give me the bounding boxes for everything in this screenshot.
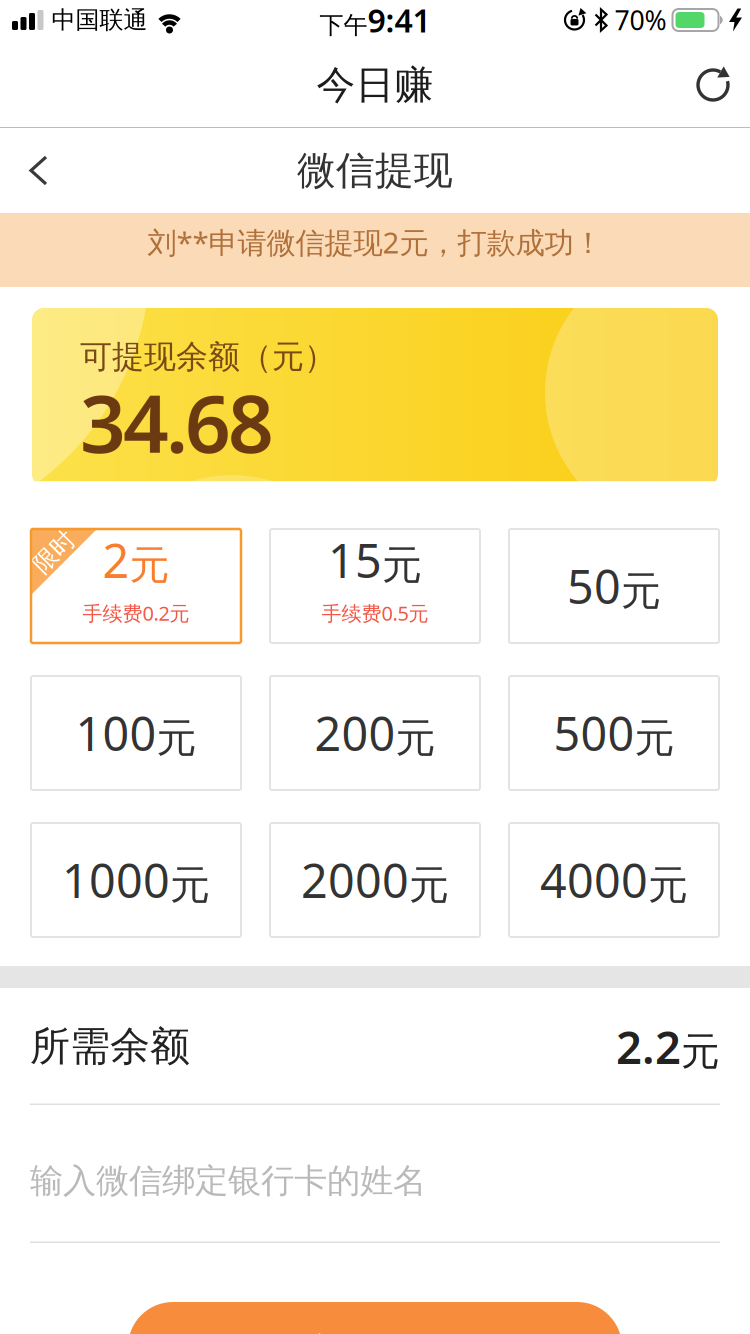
staticText: 50元 (567, 555, 661, 617)
staticText: 输入微信绑定银行卡的姓名 (30, 1160, 426, 1201)
button[interactable]: 输入微信绑定银行卡的姓名 (0, 1105, 750, 1243)
button[interactable]: 返回 (0, 129, 48, 211)
button[interactable]: 刷新 (696, 66, 750, 104)
button[interactable]: 立即提现 (128, 1302, 622, 1334)
staticText: 限时 (30, 537, 78, 567)
button[interactable]: 500元 (509, 676, 719, 790)
staticText: 500元 (553, 702, 674, 764)
button[interactable]: 2000元 (270, 823, 480, 937)
staticText: 今日赚 (316, 61, 433, 109)
staticText: 2000元 (301, 849, 449, 911)
button[interactable]: 4000元 (509, 823, 719, 937)
staticText: 可提现余额（元） (80, 337, 336, 376)
staticText: 15元 (328, 529, 422, 591)
staticText: 微信提现 (297, 147, 453, 194)
button[interactable]: 50元 (509, 529, 719, 643)
staticText: 70% (614, 2, 666, 38)
staticText: 200元 (314, 702, 435, 764)
button[interactable]: 100元 (31, 676, 241, 790)
staticText: 34.68 (80, 368, 274, 475)
staticText: 所需余额 (30, 1022, 190, 1071)
staticText: 手续费0.5元 (321, 600, 428, 626)
staticText: 1000元 (62, 849, 210, 911)
button[interactable]: 200元 (270, 676, 480, 790)
button[interactable]: 限时 (31, 529, 241, 643)
staticText: 4000元 (540, 849, 688, 911)
staticText: 立即提现 (305, 1330, 445, 1334)
staticText: 2元 (102, 529, 169, 591)
staticText: 中国联通 (51, 5, 147, 35)
staticText: 手续费0.2元 (82, 600, 189, 626)
staticText: 2.2元 (616, 1016, 720, 1077)
staticText: 下午9:41 (319, 0, 430, 41)
staticText: 100元 (75, 702, 196, 764)
staticText: 刘**申请微信提现2元，打款成功！ (147, 222, 602, 261)
button[interactable]: 15元 (270, 529, 480, 643)
button[interactable]: 1000元 (31, 823, 241, 937)
